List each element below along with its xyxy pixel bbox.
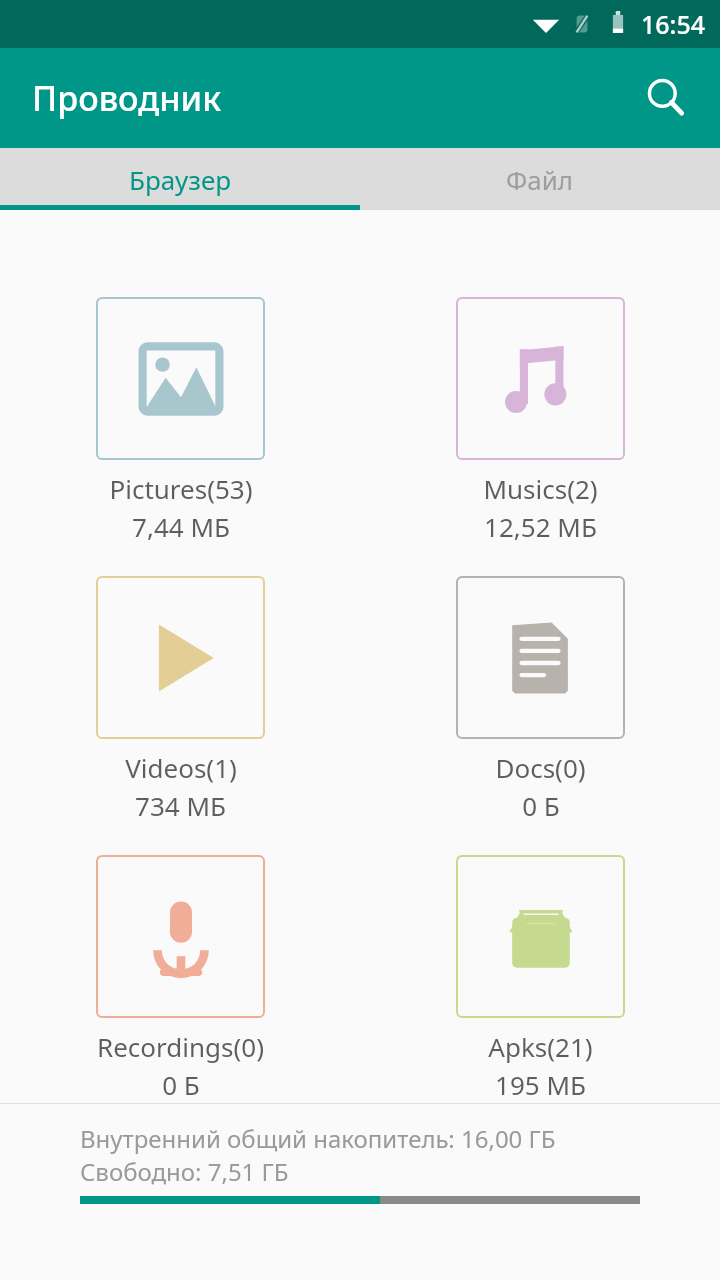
staticText: 0 Б [162, 1067, 200, 1102]
staticText: 16:54 [641, 7, 706, 41]
staticText: Docs(0) [495, 750, 586, 785]
button[interactable]: Файл [360, 148, 720, 210]
staticText: 7,44 МБ [132, 509, 230, 544]
button[interactable]: Pictures(53) [96, 297, 265, 544]
staticText: Apks(21) [488, 1029, 593, 1064]
staticText: Recordings(0) [97, 1029, 264, 1064]
staticText: 195 МБ [495, 1067, 586, 1102]
staticText: 0 Б [522, 788, 560, 823]
staticText: Musics(2) [483, 471, 598, 506]
staticText: 734 МБ [135, 788, 226, 823]
button[interactable]: Videos(1) [96, 576, 265, 823]
button[interactable]: Apks(21) [456, 855, 625, 1102]
staticText: Внутренний общий накопитель: 16,00 ГБ [80, 1122, 556, 1155]
staticText: Videos(1) [125, 750, 237, 785]
staticText: Проводник [32, 75, 222, 121]
staticText: Браузер [129, 162, 232, 197]
button[interactable]: Recordings(0) [96, 855, 265, 1102]
staticText: Файл [506, 162, 574, 197]
button[interactable]: Docs(0) [456, 576, 625, 823]
button[interactable]: Musics(2) [456, 297, 625, 544]
staticText: Pictures(53) [109, 471, 253, 506]
button[interactable]: Search [630, 62, 702, 134]
staticText: Свободно: 7,51 ГБ [80, 1155, 289, 1188]
staticText: 12,52 МБ [484, 509, 597, 544]
button[interactable]: Браузер [0, 148, 360, 210]
